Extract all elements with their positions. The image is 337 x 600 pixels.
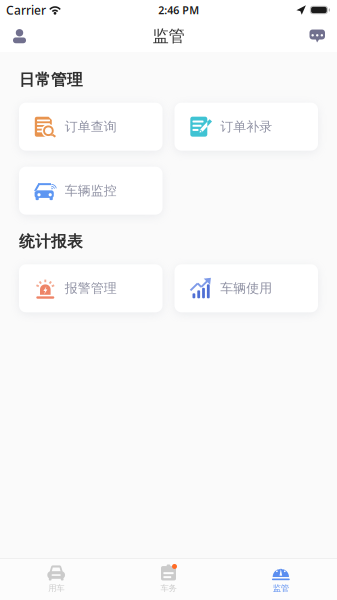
button[interactable]: 车辆使用 bbox=[174, 264, 318, 312]
staticText: 日常管理 bbox=[19, 70, 83, 90]
staticText: 订单补录 bbox=[220, 118, 272, 135]
staticText: 监管 bbox=[273, 583, 289, 594]
staticText: 统计报表 bbox=[19, 232, 83, 251]
staticText: 用车 bbox=[48, 583, 64, 594]
staticText: 车辆使用 bbox=[220, 280, 272, 296]
button[interactable]: 订单补录 bbox=[174, 103, 318, 151]
button[interactable]: Messages bbox=[301, 22, 333, 49]
staticText: 监管 bbox=[152, 26, 184, 46]
staticText: 报警管理 bbox=[65, 280, 117, 296]
button[interactable]: 车辆监控 bbox=[19, 167, 162, 215]
button[interactable]: 报警管理 bbox=[19, 264, 162, 312]
button[interactable]: 用车 bbox=[0, 558, 112, 600]
button[interactable]: 监管 bbox=[225, 558, 337, 600]
staticText: 2:46 PM bbox=[158, 3, 199, 17]
staticText: 车辆监控 bbox=[65, 182, 117, 199]
button[interactable]: 车务 bbox=[112, 558, 225, 600]
staticText: Carrier bbox=[6, 2, 46, 18]
button[interactable]: 订单查询 bbox=[19, 103, 162, 151]
staticText: 车务 bbox=[160, 583, 176, 594]
button[interactable]: Profile bbox=[4, 22, 35, 50]
staticText: 订单查询 bbox=[65, 118, 117, 135]
